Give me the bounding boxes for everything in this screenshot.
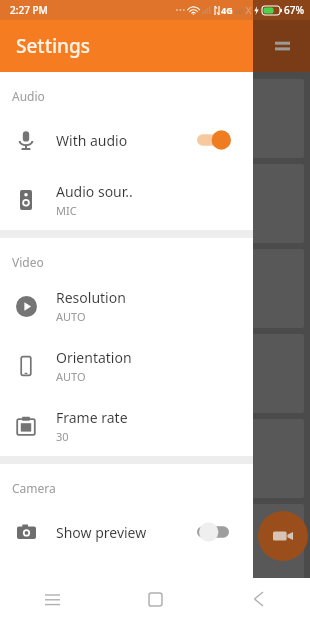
staticText: 4G [221, 4, 233, 16]
staticText: 30 [56, 429, 69, 444]
button[interactable]: Recents [0, 578, 104, 620]
button[interactable]: RECO... [6, 589, 304, 617]
staticText: RECO... [16, 605, 61, 617]
staticText: RECO... [16, 435, 61, 453]
staticText: Audio sour.. [56, 182, 133, 201]
button[interactable]: RECO... [6, 164, 304, 243]
button[interactable]: Back [207, 578, 310, 620]
staticText: AUTO [56, 369, 86, 384]
staticText: Audio [12, 88, 45, 104]
staticText: Video len... [16, 121, 73, 136]
staticText: Settings [16, 33, 90, 59]
button[interactable] [195, 521, 235, 543]
staticText: RECO... [16, 265, 61, 283]
button[interactable]: With audio [0, 110, 253, 170]
staticText: AUTO [56, 309, 86, 324]
button[interactable]: Record video [258, 511, 308, 561]
button[interactable]: RECO... [6, 249, 304, 328]
button[interactable]: RECO... [6, 419, 304, 498]
staticText: Orientation [56, 348, 132, 367]
button[interactable]: Home [104, 578, 207, 620]
staticText: Frame rate [56, 408, 128, 427]
staticText: Video len... [16, 461, 73, 476]
button[interactable]: Frame rate [0, 396, 253, 456]
staticText: Resolution [56, 288, 126, 307]
staticText: Video len... [16, 291, 73, 306]
staticText: 67% [284, 3, 304, 17]
staticText: RECO... [16, 95, 61, 113]
button[interactable]: RECO... [6, 79, 304, 158]
staticText: Show preview [56, 523, 147, 542]
button[interactable]: Resolution [0, 276, 253, 336]
staticText: RECO... [16, 180, 61, 198]
button[interactable]: RECO... [6, 504, 304, 583]
button[interactable] [195, 129, 235, 151]
button[interactable]: Orientation [0, 336, 253, 396]
button[interactable]: Menu [265, 29, 299, 63]
staticText: RECO... [16, 350, 61, 368]
button[interactable]: RECO... [6, 334, 304, 413]
button[interactable]: Audio sour.. [0, 170, 253, 230]
staticText: RECO... [16, 520, 61, 538]
button[interactable]: Show preview [0, 502, 253, 562]
staticText: Video len... [16, 206, 73, 221]
staticText: 2:27 PM [10, 3, 48, 17]
staticText: With audio [56, 131, 128, 150]
staticText: Video [12, 254, 44, 270]
staticText: Video len... [16, 376, 73, 391]
staticText: Camera [12, 480, 56, 496]
staticText: MIC [56, 203, 77, 218]
